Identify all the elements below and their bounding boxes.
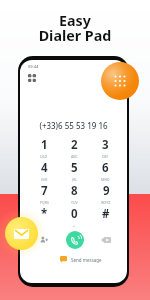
- button[interactable]: 8: [59, 183, 90, 206]
- staticText: 8: [71, 183, 78, 199]
- button[interactable]: Messages: [5, 217, 38, 250]
- staticText: 1: [41, 137, 48, 153]
- button[interactable]: Add contact: [40, 236, 48, 244]
- staticText: #: [102, 206, 110, 222]
- button[interactable]: Backspace: [101, 237, 111, 243]
- staticText: 5: [71, 160, 78, 176]
- staticText: 2: [71, 137, 78, 153]
- button[interactable]: Call: [66, 231, 84, 249]
- staticText: 0: [71, 206, 78, 222]
- staticText: +: [73, 223, 76, 228]
- button[interactable]: Apps: [28, 74, 36, 82]
- button[interactable]: 0: [59, 206, 90, 229]
- staticText: MNO: [101, 177, 110, 182]
- staticText: PQRS: [40, 200, 49, 205]
- staticText: 7: [41, 183, 48, 199]
- staticText: 09:44: [28, 64, 39, 69]
- staticText: ABC: [71, 154, 78, 159]
- staticText: TUV: [71, 200, 78, 205]
- staticText: Easy Dialer Pad: [0, 11, 150, 45]
- button[interactable]: 4: [29, 160, 59, 183]
- button[interactable]: #: [90, 206, 121, 229]
- staticText: Send message: [71, 257, 102, 263]
- button[interactable]: 2: [59, 137, 90, 160]
- staticText: (+33)6 55 53 19 16: [20, 120, 127, 131]
- button[interactable]: 6: [90, 160, 121, 183]
- staticText: *: [41, 206, 48, 222]
- staticText: 9: [103, 183, 110, 199]
- staticText: DEF: [102, 154, 109, 159]
- button[interactable]: *: [29, 206, 59, 229]
- button[interactable]: 1: [29, 137, 59, 160]
- staticText: 4: [41, 160, 48, 176]
- button[interactable]: 9: [90, 183, 121, 206]
- staticText: 3: [102, 137, 109, 153]
- staticText: WXYZ: [101, 200, 111, 205]
- button[interactable]: 5: [59, 160, 90, 183]
- button[interactable]: 7: [29, 183, 59, 206]
- staticText: QLD: [40, 154, 48, 159]
- staticText: 6: [102, 160, 109, 176]
- staticText: GHI: [41, 177, 48, 182]
- staticText: JKL: [72, 177, 77, 182]
- button[interactable]: Send message: [60, 256, 102, 263]
- button[interactable]: Open dialpad: [101, 62, 139, 100]
- button[interactable]: 3: [90, 137, 121, 160]
